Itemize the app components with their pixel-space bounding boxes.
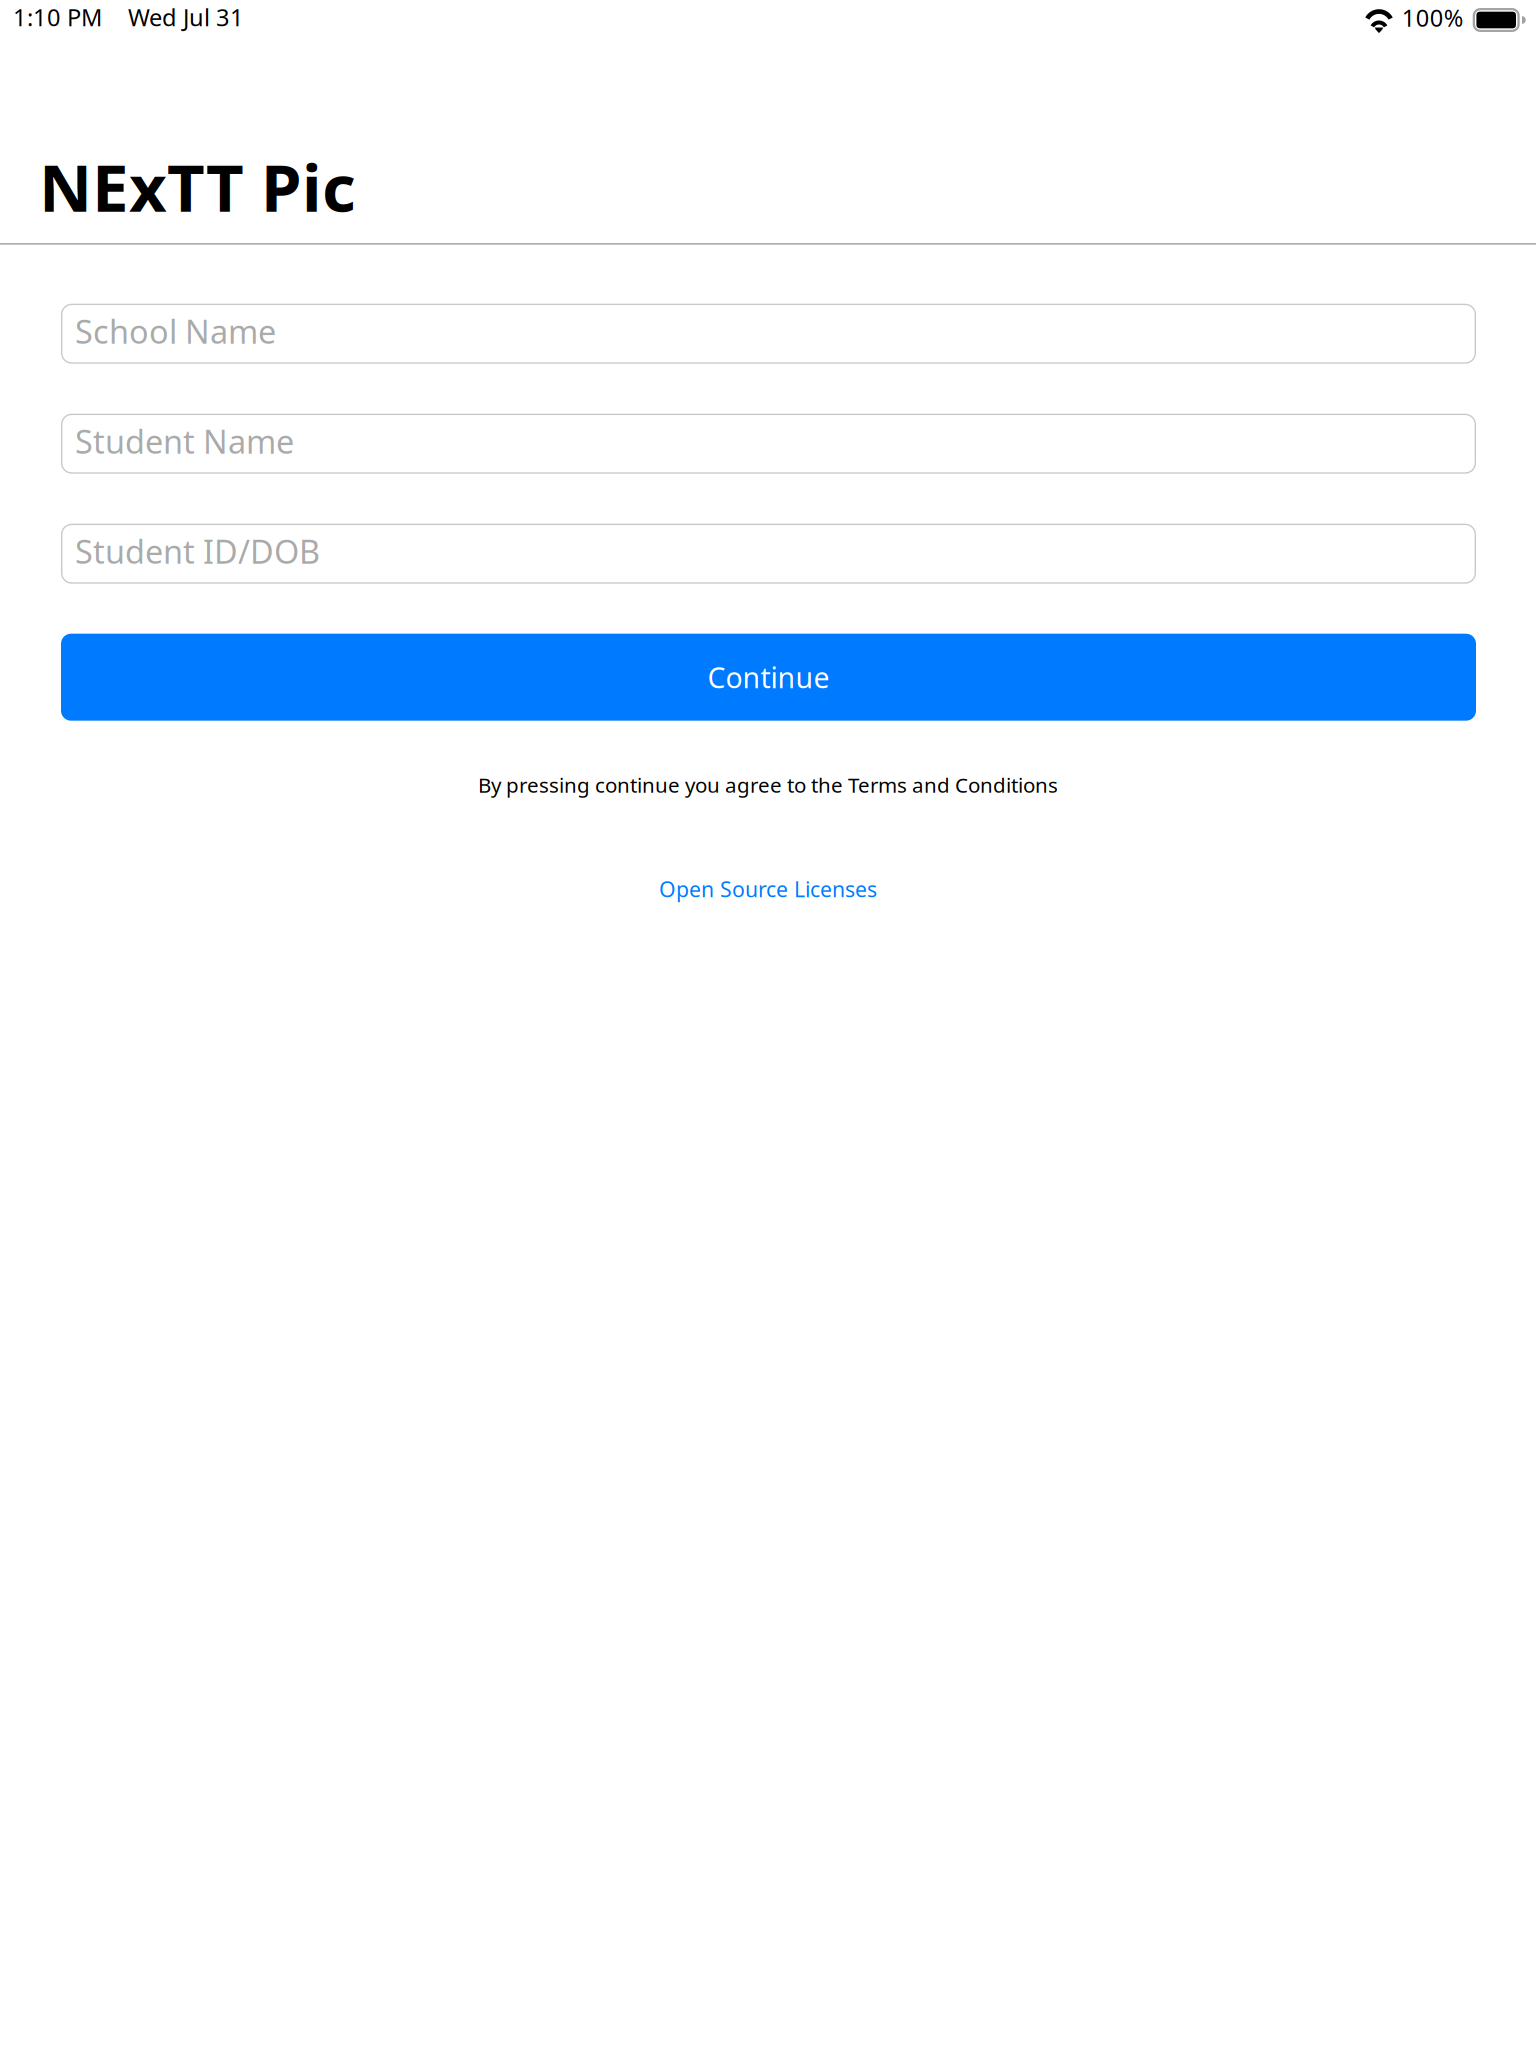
staticText: Wed Jul 31 <box>128 1 244 33</box>
staticText: Open Source Licenses <box>659 875 877 904</box>
staticText: 1:10 PM <box>13 1 102 33</box>
button[interactable]: Student ID/DOB <box>61 524 1476 584</box>
button[interactable]: Student Name <box>61 414 1476 474</box>
staticText: 100% <box>1402 1 1464 33</box>
button[interactable]: School Name <box>61 304 1476 364</box>
staticText: Student Name <box>75 419 294 463</box>
staticText: NExTT Pic <box>39 142 356 231</box>
staticText: By pressing continue you agree to the Te… <box>478 771 1058 799</box>
staticText: School Name <box>75 309 276 353</box>
staticText: Continue <box>707 658 829 697</box>
button[interactable]: Continue <box>61 634 1476 721</box>
button[interactable]: Open Source Licenses <box>659 875 877 904</box>
staticText: Student ID/DOB <box>75 529 320 573</box>
